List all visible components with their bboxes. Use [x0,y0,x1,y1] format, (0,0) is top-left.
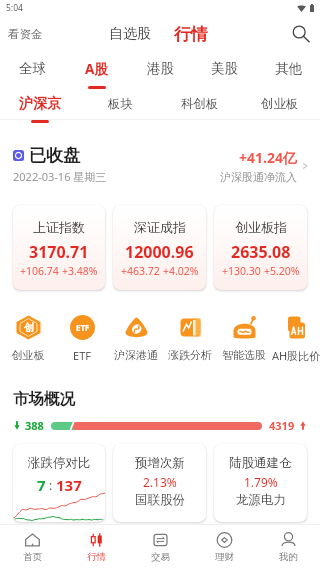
staticText: ETF [55,348,109,363]
staticText: 预增次新 [135,455,185,471]
button[interactable]: 自选股 [103,20,157,48]
staticText: A股 [85,60,108,78]
staticText: 5:04 [6,2,23,14]
staticText: 3170.71 [29,241,89,263]
staticText: 理财 [215,551,234,563]
staticText: 美股 [211,60,238,77]
staticText: +106.74 [20,264,59,278]
button[interactable]: 看资金 [0,22,49,46]
button[interactable]: 理财 [192,526,256,568]
button[interactable]: 其他 [256,54,320,90]
staticText: 陆股通建仓 [229,455,292,471]
staticText: 涨跌停对比 [28,455,91,471]
staticText: 看资金 [8,27,43,41]
button[interactable]: 深证成指 [113,205,206,290]
staticText: 创 [24,321,34,334]
staticText: 创业板 [1,348,55,362]
staticText: 沪深京 [19,95,61,113]
staticText: 港股 [147,60,174,77]
staticText: 创业板指 [235,219,287,235]
staticText: +463.72 [121,264,160,278]
button[interactable]: 陆股通建仓 [214,444,307,522]
staticText: 创业板 [261,96,299,112]
staticText: 龙源电力 [236,492,286,508]
button[interactable]: 行情 [168,19,214,50]
staticText: 板块 [108,96,133,112]
button[interactable]: A股 [64,54,128,90]
staticText: 涨跌分析 [163,348,217,362]
staticText: 智能选股 [217,348,271,362]
staticText: +5.20% [264,264,300,278]
staticText: +4.02% [163,264,199,278]
staticText: 全球 [19,60,46,77]
staticText: 388 [25,418,44,433]
staticText: 2.13% [143,474,177,490]
button[interactable]: 交易 [128,526,192,568]
staticText: 交易 [151,551,170,563]
staticText: 上证指数 [33,219,85,235]
staticText: 市场概况 [13,389,75,409]
button[interactable]: 沪深京 [0,92,80,123]
staticText: : [46,477,56,493]
staticText: 2022-03-16 星期三 [13,169,107,184]
staticText: 行情 [87,551,106,563]
staticText: 我的 [279,551,298,563]
button[interactable]: 我的 [256,526,320,568]
button[interactable]: 创 [1,315,55,362]
button[interactable]: 板块 [80,92,160,123]
button[interactable]: Search [287,20,315,48]
staticText: 沪深港通 [109,348,163,362]
staticText: 4319 [269,418,295,433]
staticText: AH股比价 [271,348,320,363]
staticText: 首页 [23,551,42,563]
staticText: 自选股 [109,25,151,43]
staticText: 科创板 [181,96,219,112]
button[interactable]: 科创板 [160,92,240,123]
button[interactable]: 涨跌停对比 [13,444,105,522]
staticText: 其他 [275,60,302,77]
staticText: +130.30 [222,264,261,278]
button[interactable]: AH股比价 [271,315,320,363]
button[interactable]: 智能选股 [217,315,271,362]
button[interactable]: 行情 [64,526,128,568]
button[interactable]: 全球 [0,54,64,90]
button[interactable]: 港股 [128,54,192,90]
staticText: 已收盘 [29,145,80,166]
button[interactable]: 沪深港通 [109,315,163,362]
button[interactable]: 预增次新 [113,444,206,522]
staticText: 2635.08 [231,241,291,263]
staticText: 深证成指 [134,219,186,235]
staticText: 沪深股通净流入 [220,170,297,184]
staticText: 国联股份 [135,492,185,508]
button[interactable]: ETF [55,315,109,363]
button[interactable]: 美股 [192,54,256,90]
staticText: 137 [56,475,82,495]
staticText: 12000.96 [125,241,194,263]
staticText: 1.79% [244,474,278,490]
staticText: 7 [37,475,46,495]
button[interactable]: +41.24亿 [220,148,309,184]
staticText: ETF [76,322,90,333]
staticText: 行情 [174,24,208,45]
staticText: +41.24亿 [239,148,297,167]
button[interactable]: 创业板 [240,92,320,123]
button[interactable]: 上证指数 [13,205,105,290]
button[interactable]: 涨跌分析 [163,315,217,362]
button[interactable]: 创业板指 [214,205,307,290]
button[interactable]: 首页 [0,526,64,568]
staticText: +3.48% [62,264,98,278]
